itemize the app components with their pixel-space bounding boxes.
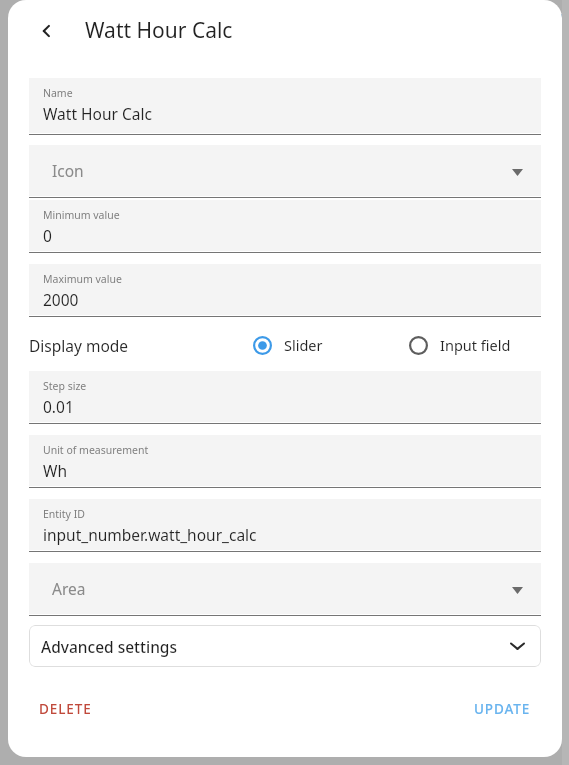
button[interactable]: Advanced settings — [29, 625, 541, 667]
button[interactable]: Name — [29, 78, 541, 135]
staticText: Watt Hour Calc — [43, 103, 152, 124]
button[interactable]: Slider — [251, 331, 325, 359]
staticText: Area — [52, 578, 86, 599]
staticText: input_number.watt_hour_calc — [43, 524, 257, 545]
staticText: Unit of measurement — [43, 443, 149, 457]
staticText: Entity ID — [43, 507, 85, 521]
staticText: Maximum value — [43, 272, 122, 286]
button[interactable]: Icon — [29, 145, 541, 198]
button[interactable]: DELETE — [29, 694, 102, 724]
button[interactable]: Step size — [29, 371, 541, 424]
button[interactable]: Unit of measurement — [29, 435, 541, 488]
staticText: Icon — [52, 160, 84, 181]
staticText: Slider — [284, 335, 323, 355]
staticText: Watt Hour Calc — [85, 16, 233, 45]
button[interactable]: Entity ID — [29, 499, 541, 552]
staticText: 0 — [43, 225, 52, 246]
staticText: Wh — [43, 460, 67, 481]
staticText: 0.01 — [43, 396, 74, 417]
button[interactable]: Back — [26, 10, 68, 52]
staticText: Minimum value — [43, 208, 120, 222]
staticText: Step size — [43, 379, 87, 393]
button[interactable]: UPDATE — [464, 694, 541, 724]
staticText: Display mode — [29, 335, 129, 356]
staticText: Advanced settings — [41, 636, 178, 657]
staticText: UPDATE — [474, 700, 531, 718]
button[interactable]: Input field — [407, 331, 513, 359]
staticText: DELETE — [39, 700, 92, 718]
button[interactable]: Area — [29, 563, 541, 616]
staticText: Input field — [440, 335, 511, 355]
button[interactable]: Minimum value — [29, 200, 541, 253]
staticText: Name — [43, 86, 73, 100]
other: Open dropdown — [510, 165, 524, 179]
other: Open dropdown — [510, 583, 524, 597]
button[interactable]: Maximum value — [29, 264, 541, 317]
staticText: 2000 — [43, 289, 79, 310]
